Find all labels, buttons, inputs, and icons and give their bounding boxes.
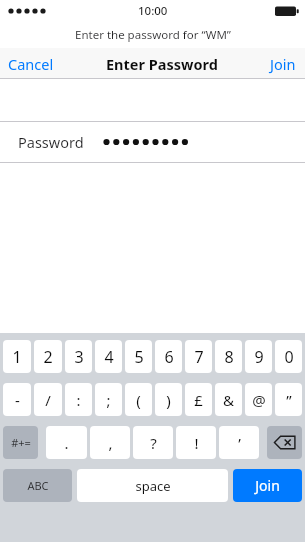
button[interactable]: ? xyxy=(133,426,173,459)
staticText: / xyxy=(45,390,51,410)
button[interactable]: ; xyxy=(95,383,122,416)
staticText: £ xyxy=(194,390,203,410)
button[interactable]: 3 xyxy=(65,340,92,373)
staticText: Enter Password xyxy=(106,54,218,74)
staticText: ’ xyxy=(238,433,241,453)
staticText: Password xyxy=(18,132,84,152)
staticText: ( xyxy=(136,390,141,410)
button[interactable]: £ xyxy=(185,383,212,416)
staticText: Cancel xyxy=(8,54,54,74)
staticText: 9 xyxy=(254,346,264,368)
button[interactable]: & xyxy=(215,383,242,416)
staticText: @ xyxy=(252,390,266,410)
button[interactable]: , xyxy=(90,426,130,459)
button[interactable]: 8 xyxy=(215,340,242,373)
button[interactable]: ( xyxy=(125,383,152,416)
staticText: ” xyxy=(286,390,292,410)
staticText: #+= xyxy=(11,435,31,450)
button[interactable]: @ xyxy=(245,383,272,416)
button[interactable]: Join xyxy=(233,469,302,502)
staticText: 4 xyxy=(104,346,114,368)
button[interactable]: Join xyxy=(270,54,296,74)
staticText: ) xyxy=(166,390,171,410)
staticText: & xyxy=(223,390,234,410)
staticText: ABC xyxy=(27,478,49,493)
staticText: 6 xyxy=(164,346,174,368)
button[interactable]: ’ xyxy=(219,426,259,459)
staticText: ? xyxy=(150,433,157,453)
staticText: , xyxy=(108,433,113,453)
button[interactable]: ! xyxy=(176,426,216,459)
button[interactable]: ” xyxy=(275,383,302,416)
staticText: 2 xyxy=(43,346,53,368)
button[interactable]: 6 xyxy=(155,340,182,373)
button[interactable]: - xyxy=(3,383,31,416)
staticText: - xyxy=(15,390,20,410)
staticText: 10:00 xyxy=(138,3,168,19)
staticText: . xyxy=(64,433,69,453)
staticText: 5 xyxy=(134,346,144,368)
button[interactable]: Cancel xyxy=(8,54,54,74)
button[interactable]: / xyxy=(34,383,62,416)
button[interactable]: 9 xyxy=(245,340,272,373)
staticText: ; xyxy=(106,390,111,410)
button[interactable]: space xyxy=(77,469,228,502)
staticText: Join xyxy=(255,476,280,495)
button[interactable]: Backspace xyxy=(267,426,302,459)
button[interactable]: . xyxy=(46,426,87,459)
button[interactable]: Password xyxy=(0,121,305,163)
staticText: ! xyxy=(194,433,199,453)
button[interactable]: ABC xyxy=(3,469,72,502)
staticText: 0 xyxy=(284,346,294,368)
button[interactable]: 2 xyxy=(34,340,62,373)
button[interactable]: 4 xyxy=(95,340,122,373)
staticText: 7 xyxy=(194,346,204,368)
button[interactable]: 7 xyxy=(185,340,212,373)
staticText: 1 xyxy=(12,346,22,368)
staticText: Enter the password for “WM” xyxy=(75,27,231,43)
button[interactable]: : xyxy=(65,383,92,416)
button[interactable]: 0 xyxy=(275,340,302,373)
staticText: 3 xyxy=(74,346,84,368)
button[interactable]: 1 xyxy=(3,340,31,373)
staticText: 8 xyxy=(224,346,234,368)
button[interactable]: ) xyxy=(155,383,182,416)
button[interactable]: #+= xyxy=(3,426,38,459)
staticText: space xyxy=(135,477,171,495)
button[interactable]: 5 xyxy=(125,340,152,373)
staticText: : xyxy=(76,390,81,410)
staticText: Join xyxy=(270,54,296,74)
